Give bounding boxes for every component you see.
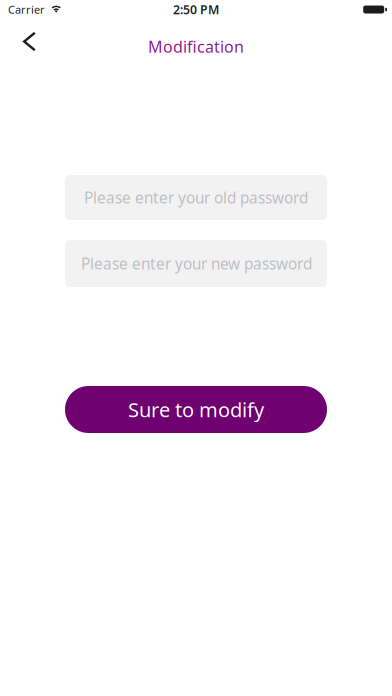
button[interactable]: Please enter your new password (65, 240, 327, 287)
button[interactable]: Please enter your old password (65, 175, 327, 220)
button[interactable]: Sure to modify (65, 386, 327, 433)
button[interactable]: Back (0, 19, 46, 64)
staticText: Modification (148, 36, 244, 57)
staticText: Sure to modify (128, 396, 264, 423)
staticText: Please enter your new password (81, 253, 312, 274)
staticText: Please enter your old password (84, 187, 308, 208)
staticText: Carrier (8, 2, 45, 17)
staticText: 2:50 PM (173, 1, 219, 18)
